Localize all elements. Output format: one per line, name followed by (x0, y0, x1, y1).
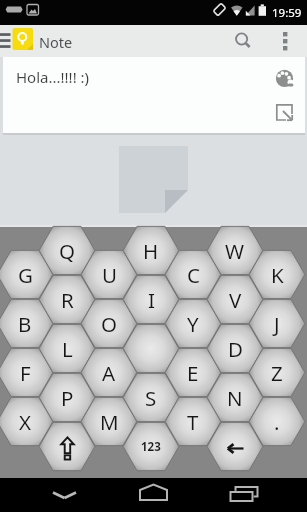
staticText: V (229, 286, 242, 314)
button[interactable]: G (0, 251, 52, 298)
staticText: W (225, 237, 245, 265)
staticText: D (228, 335, 243, 363)
button[interactable]: H (124, 227, 178, 274)
staticText: L (62, 335, 73, 363)
staticText: G (18, 261, 33, 289)
staticText: O (101, 310, 118, 338)
staticText: U (102, 261, 117, 289)
staticText: Z (271, 359, 283, 387)
staticText: 19:59 (272, 5, 302, 21)
staticText: I (148, 286, 155, 314)
button[interactable]: S (124, 374, 178, 421)
button[interactable]: N (208, 374, 262, 421)
button[interactable]: K (250, 251, 304, 298)
button[interactable]: L (40, 325, 94, 372)
staticText: Y (187, 310, 199, 338)
button[interactable]: I (124, 276, 178, 323)
button[interactable] (276, 25, 296, 57)
button[interactable]: J (250, 300, 304, 347)
button[interactable]: B (0, 300, 52, 347)
staticText: K (271, 261, 284, 289)
staticText: A (102, 359, 116, 387)
staticText: F (20, 359, 31, 387)
button[interactable] (49, 484, 79, 506)
staticText: S (145, 384, 157, 412)
staticText: T (187, 408, 199, 436)
staticText: Hola...!!!! :) (16, 67, 90, 87)
button[interactable]: V (208, 276, 262, 323)
button[interactable]: Q (40, 227, 94, 274)
staticText: X (19, 408, 32, 436)
button[interactable]: O (82, 300, 136, 347)
button[interactable] (208, 423, 262, 470)
staticText: N (227, 384, 243, 412)
button[interactable]: C (166, 251, 220, 298)
button[interactable]: Y (166, 300, 220, 347)
button[interactable] (272, 102, 298, 128)
staticText: . (274, 408, 280, 436)
button[interactable]: U (82, 251, 136, 298)
button[interactable]: . (250, 398, 304, 445)
staticText: B (18, 310, 32, 338)
staticText: E (187, 359, 199, 387)
staticText: Q (59, 237, 76, 265)
button[interactable]: M (82, 398, 136, 445)
staticText: P (61, 384, 74, 412)
button[interactable] (228, 25, 256, 57)
button[interactable] (136, 482, 171, 508)
button[interactable] (40, 423, 94, 470)
staticText: C (187, 261, 200, 289)
button[interactable] (272, 68, 296, 90)
button[interactable]: R (40, 276, 94, 323)
staticText: Note (39, 32, 73, 52)
staticText: M (100, 408, 119, 436)
staticText: R (61, 286, 74, 314)
button[interactable]: E (166, 349, 220, 396)
button[interactable]: D (208, 325, 262, 372)
button[interactable] (227, 484, 261, 506)
staticText: J (274, 310, 280, 338)
button[interactable]: Z (250, 349, 304, 396)
button[interactable]: A (82, 349, 136, 396)
button[interactable] (124, 325, 178, 372)
button[interactable]: 123 (124, 423, 178, 470)
button[interactable]: P (40, 374, 94, 421)
button[interactable]: X (0, 398, 52, 445)
button[interactable]: W (208, 227, 262, 274)
staticText: H (143, 237, 159, 265)
button[interactable]: F (0, 349, 52, 396)
button[interactable]: T (166, 398, 220, 445)
button[interactable]: Hola...!!!! :) (3, 57, 305, 133)
staticText: 123 (141, 439, 161, 455)
